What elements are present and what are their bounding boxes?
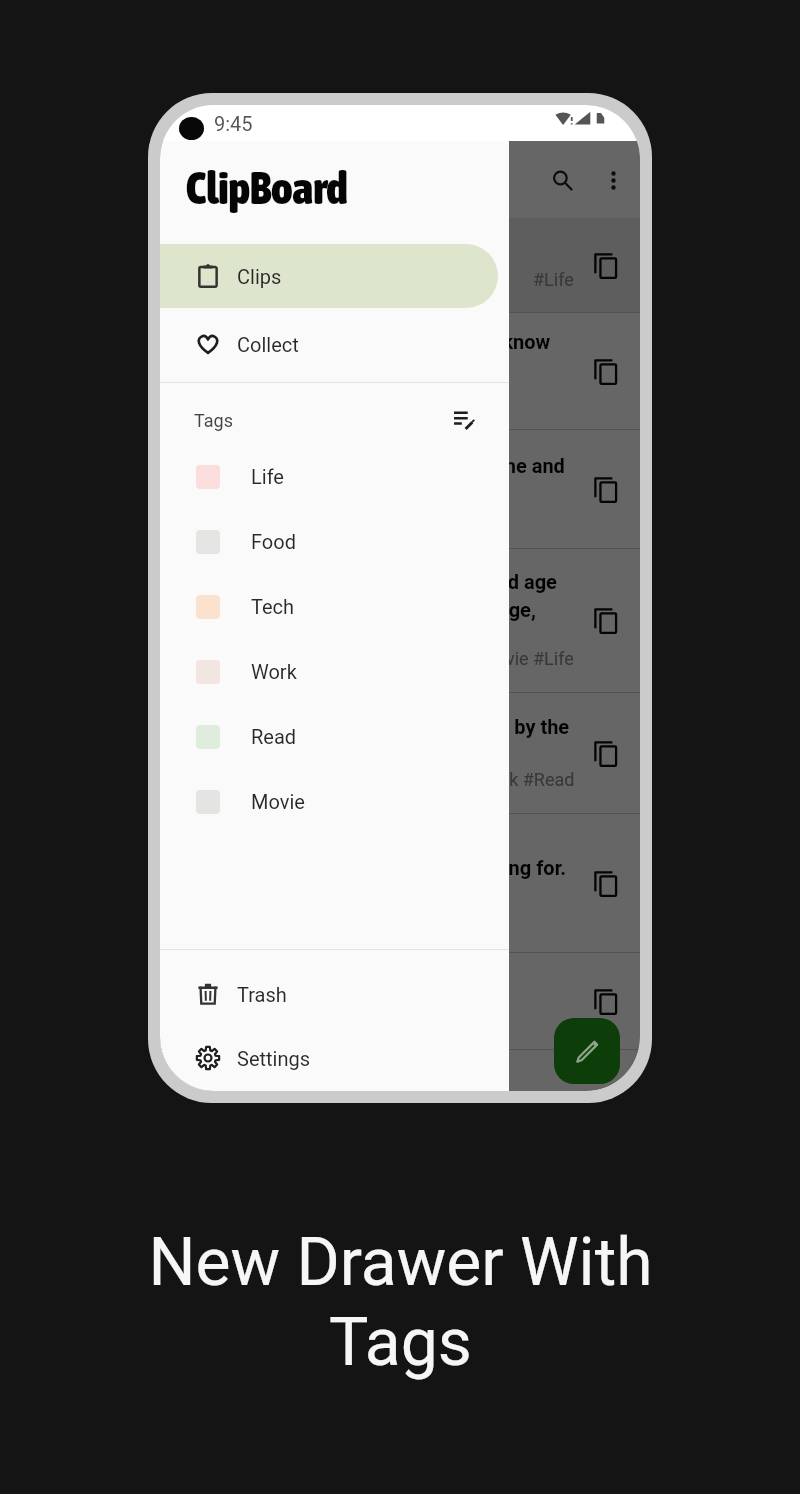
button[interactable]: The more you know the more (160, 313, 640, 430)
staticText: Food (251, 530, 296, 553)
button[interactable]: Everything you imagine is by the (160, 693, 640, 814)
staticText: Read (251, 725, 297, 748)
button[interactable]: Search (538, 156, 586, 204)
button[interactable]: Copy (594, 989, 617, 1015)
staticText: living someone else's life looking for. (235, 856, 567, 879)
button[interactable]: Everything that has a beginning (160, 430, 640, 549)
button[interactable]: Copy (594, 359, 617, 385)
staticText: Movie (251, 790, 305, 813)
button[interactable]: Food (160, 509, 509, 574)
staticText: you don't know (417, 330, 551, 353)
staticText: Don't regret growing old age (305, 570, 557, 593)
button[interactable]: Movie (160, 769, 509, 834)
button[interactable]: Work (160, 639, 509, 704)
button[interactable]: Trash (160, 962, 498, 1026)
button[interactable]: Settings (160, 1026, 498, 1090)
staticText: Work (251, 660, 297, 683)
staticText: 9:45 (214, 112, 253, 135)
button[interactable]: New clip (554, 1018, 620, 1084)
staticText: Collect (237, 333, 299, 356)
button[interactable]: Clips (160, 244, 498, 308)
button[interactable]: Tech (160, 574, 509, 639)
staticText: #Life (533, 269, 574, 290)
staticText: #Movie #Life (469, 648, 574, 669)
button[interactable]: Your time is limited, so don't waste it (160, 814, 640, 953)
button[interactable]: Copy (594, 608, 617, 634)
staticText: Everything that has a beginning (217, 426, 500, 449)
button[interactable]: Collect (160, 312, 498, 376)
staticText: it's a privilege, wise age, (319, 598, 536, 621)
staticText: has an end one and (391, 454, 565, 477)
staticText: Tags (194, 410, 233, 431)
staticText: #Work #Read (466, 769, 575, 790)
staticText: Tech (251, 595, 295, 618)
button[interactable]: Copy (594, 741, 617, 767)
button[interactable]: Edit tags (444, 401, 482, 439)
button[interactable]: A bird in the hand is worth (160, 218, 640, 313)
staticText: ClipBoard (186, 162, 348, 214)
button[interactable]: Life (160, 444, 509, 509)
staticText: The more you know the more (238, 302, 500, 325)
button[interactable]: Read (160, 704, 509, 769)
staticText: Everything you imagine is by the (279, 715, 570, 738)
staticText: A bird in the hand is worth (264, 236, 500, 259)
staticText: Life (251, 465, 284, 488)
staticText: Settings (237, 1047, 311, 1070)
staticText: New Drawer With Tags (148, 1224, 653, 1381)
button[interactable]: Copy (594, 871, 617, 897)
staticText: Trash (237, 983, 287, 1006)
button[interactable]: Don't regret growing old age (160, 549, 640, 693)
button[interactable]: More options (591, 158, 635, 202)
button[interactable]: Copy (594, 477, 617, 503)
button[interactable]: Copy (594, 253, 617, 279)
staticText: The best way out is always through. (188, 973, 510, 996)
button[interactable]: The best way out is always through. (160, 953, 640, 1050)
staticText: Clips (237, 265, 282, 288)
